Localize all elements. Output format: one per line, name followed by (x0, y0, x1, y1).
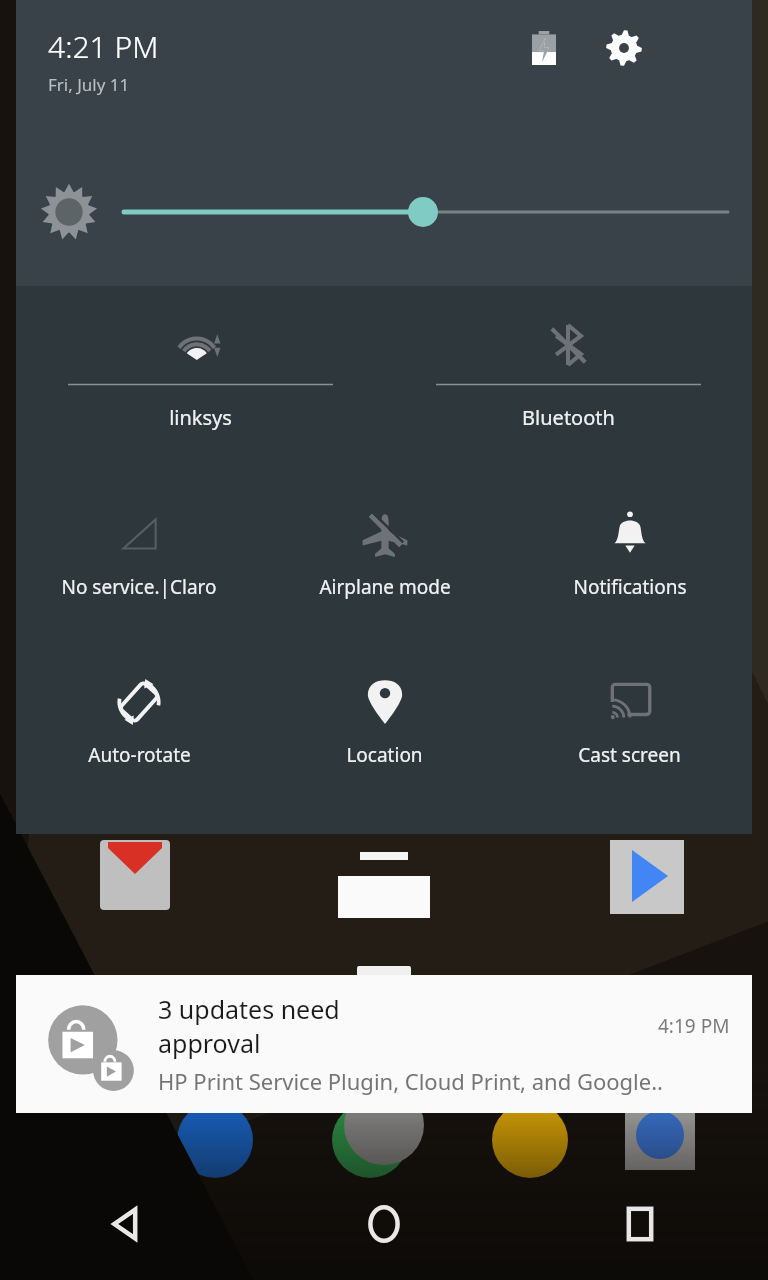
staticText: 4:19 PM (658, 1013, 730, 1039)
staticText: HP Print Service Plugin, Cloud Print, an… (158, 1066, 663, 1096)
button[interactable]: Settings (600, 24, 648, 72)
staticText: No service.|Claro (61, 574, 217, 600)
staticText: Bluetooth (522, 404, 615, 431)
button[interactable]: Location (262, 654, 507, 822)
staticText: Cast screen (578, 742, 681, 768)
button[interactable]: Airplane mode (262, 486, 507, 654)
staticText: linksys (169, 404, 232, 431)
staticText: Notifications (573, 574, 687, 600)
staticText: Fri, July 11 (48, 73, 130, 96)
button[interactable] (38, 176, 728, 248)
button[interactable]: Auto-rotate (16, 654, 262, 822)
button[interactable]: Recent apps (512, 1168, 768, 1280)
staticText: 3 updates need approval (158, 992, 408, 1060)
staticText: Airplane mode (319, 574, 451, 600)
staticText: Location (346, 742, 423, 768)
staticText: Auto-rotate (88, 742, 191, 768)
button[interactable]: Notifications (507, 486, 752, 654)
staticText: 4:21 PM (48, 26, 159, 67)
button[interactable]: 3 updates need approval (16, 975, 752, 1113)
button[interactable]: No service.|Claro (16, 486, 262, 654)
button[interactable]: Cast screen (507, 654, 752, 822)
button[interactable]: linksys (16, 286, 384, 486)
button[interactable]: Battery charging (522, 26, 566, 70)
button[interactable]: Bluetooth (384, 286, 752, 486)
button[interactable]: Back (0, 1168, 256, 1280)
button[interactable]: Home (256, 1168, 512, 1280)
